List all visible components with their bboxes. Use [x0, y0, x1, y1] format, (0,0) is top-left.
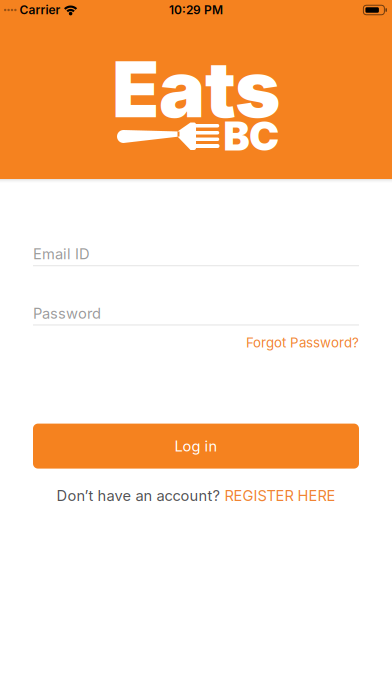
button[interactable]: Forgot Password?: [246, 335, 359, 350]
button[interactable]: REGISTER HERE: [224, 487, 335, 504]
staticText: Password: [33, 305, 101, 322]
staticText: BC: [223, 112, 278, 160]
staticText: Eats: [112, 43, 280, 135]
button[interactable]: Email ID: [33, 246, 359, 266]
staticText: Don’t have an account?: [56, 487, 219, 504]
staticText: Carrier: [20, 3, 61, 17]
staticText: 10:29 PM: [169, 3, 223, 17]
button[interactable]: Log in: [33, 424, 359, 469]
staticText: REGISTER HERE: [224, 487, 335, 504]
button[interactable]: Password: [33, 305, 359, 326]
staticText: Email ID: [33, 245, 90, 263]
staticText: Forgot Password?: [246, 335, 359, 350]
staticText: Log in: [174, 437, 217, 455]
